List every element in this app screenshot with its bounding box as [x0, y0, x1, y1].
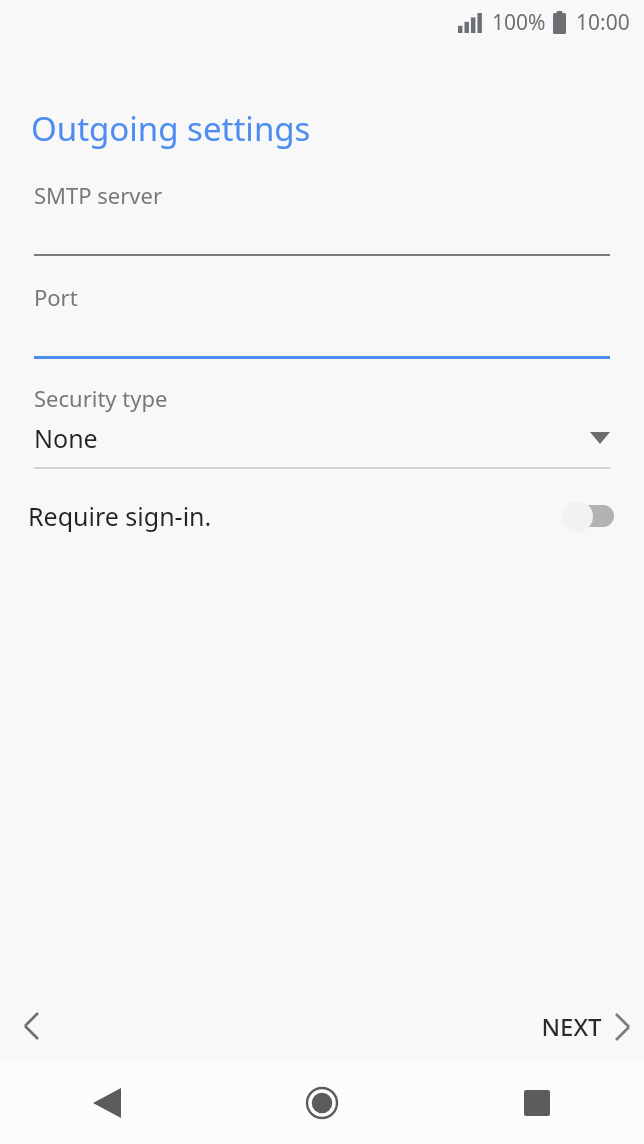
staticText: Security type: [34, 383, 168, 413]
staticText: Port: [34, 282, 78, 312]
button[interactable]: Require sign-in.: [0, 485, 644, 547]
button[interactable]: SMTP server: [0, 180, 644, 256]
button[interactable]: Port: [0, 282, 644, 359]
other: Open security type menu: [590, 432, 610, 444]
staticText: NEXT: [541, 1010, 602, 1043]
button[interactable]: Security type: [0, 383, 644, 469]
staticText: Require sign-in.: [28, 499, 212, 533]
staticText: 100%: [492, 8, 546, 37]
button[interactable]: NEXT: [521, 998, 644, 1055]
staticText: Outgoing settings: [31, 106, 311, 151]
button[interactable]: Home: [214, 1062, 429, 1144]
button[interactable]: Back: [0, 995, 62, 1057]
button[interactable]: Back: [0, 1062, 214, 1144]
button[interactable]: Recent apps: [429, 1062, 644, 1144]
staticText: 10:00: [576, 8, 630, 37]
staticText: SMTP server: [34, 180, 162, 210]
staticText: None: [34, 421, 98, 455]
